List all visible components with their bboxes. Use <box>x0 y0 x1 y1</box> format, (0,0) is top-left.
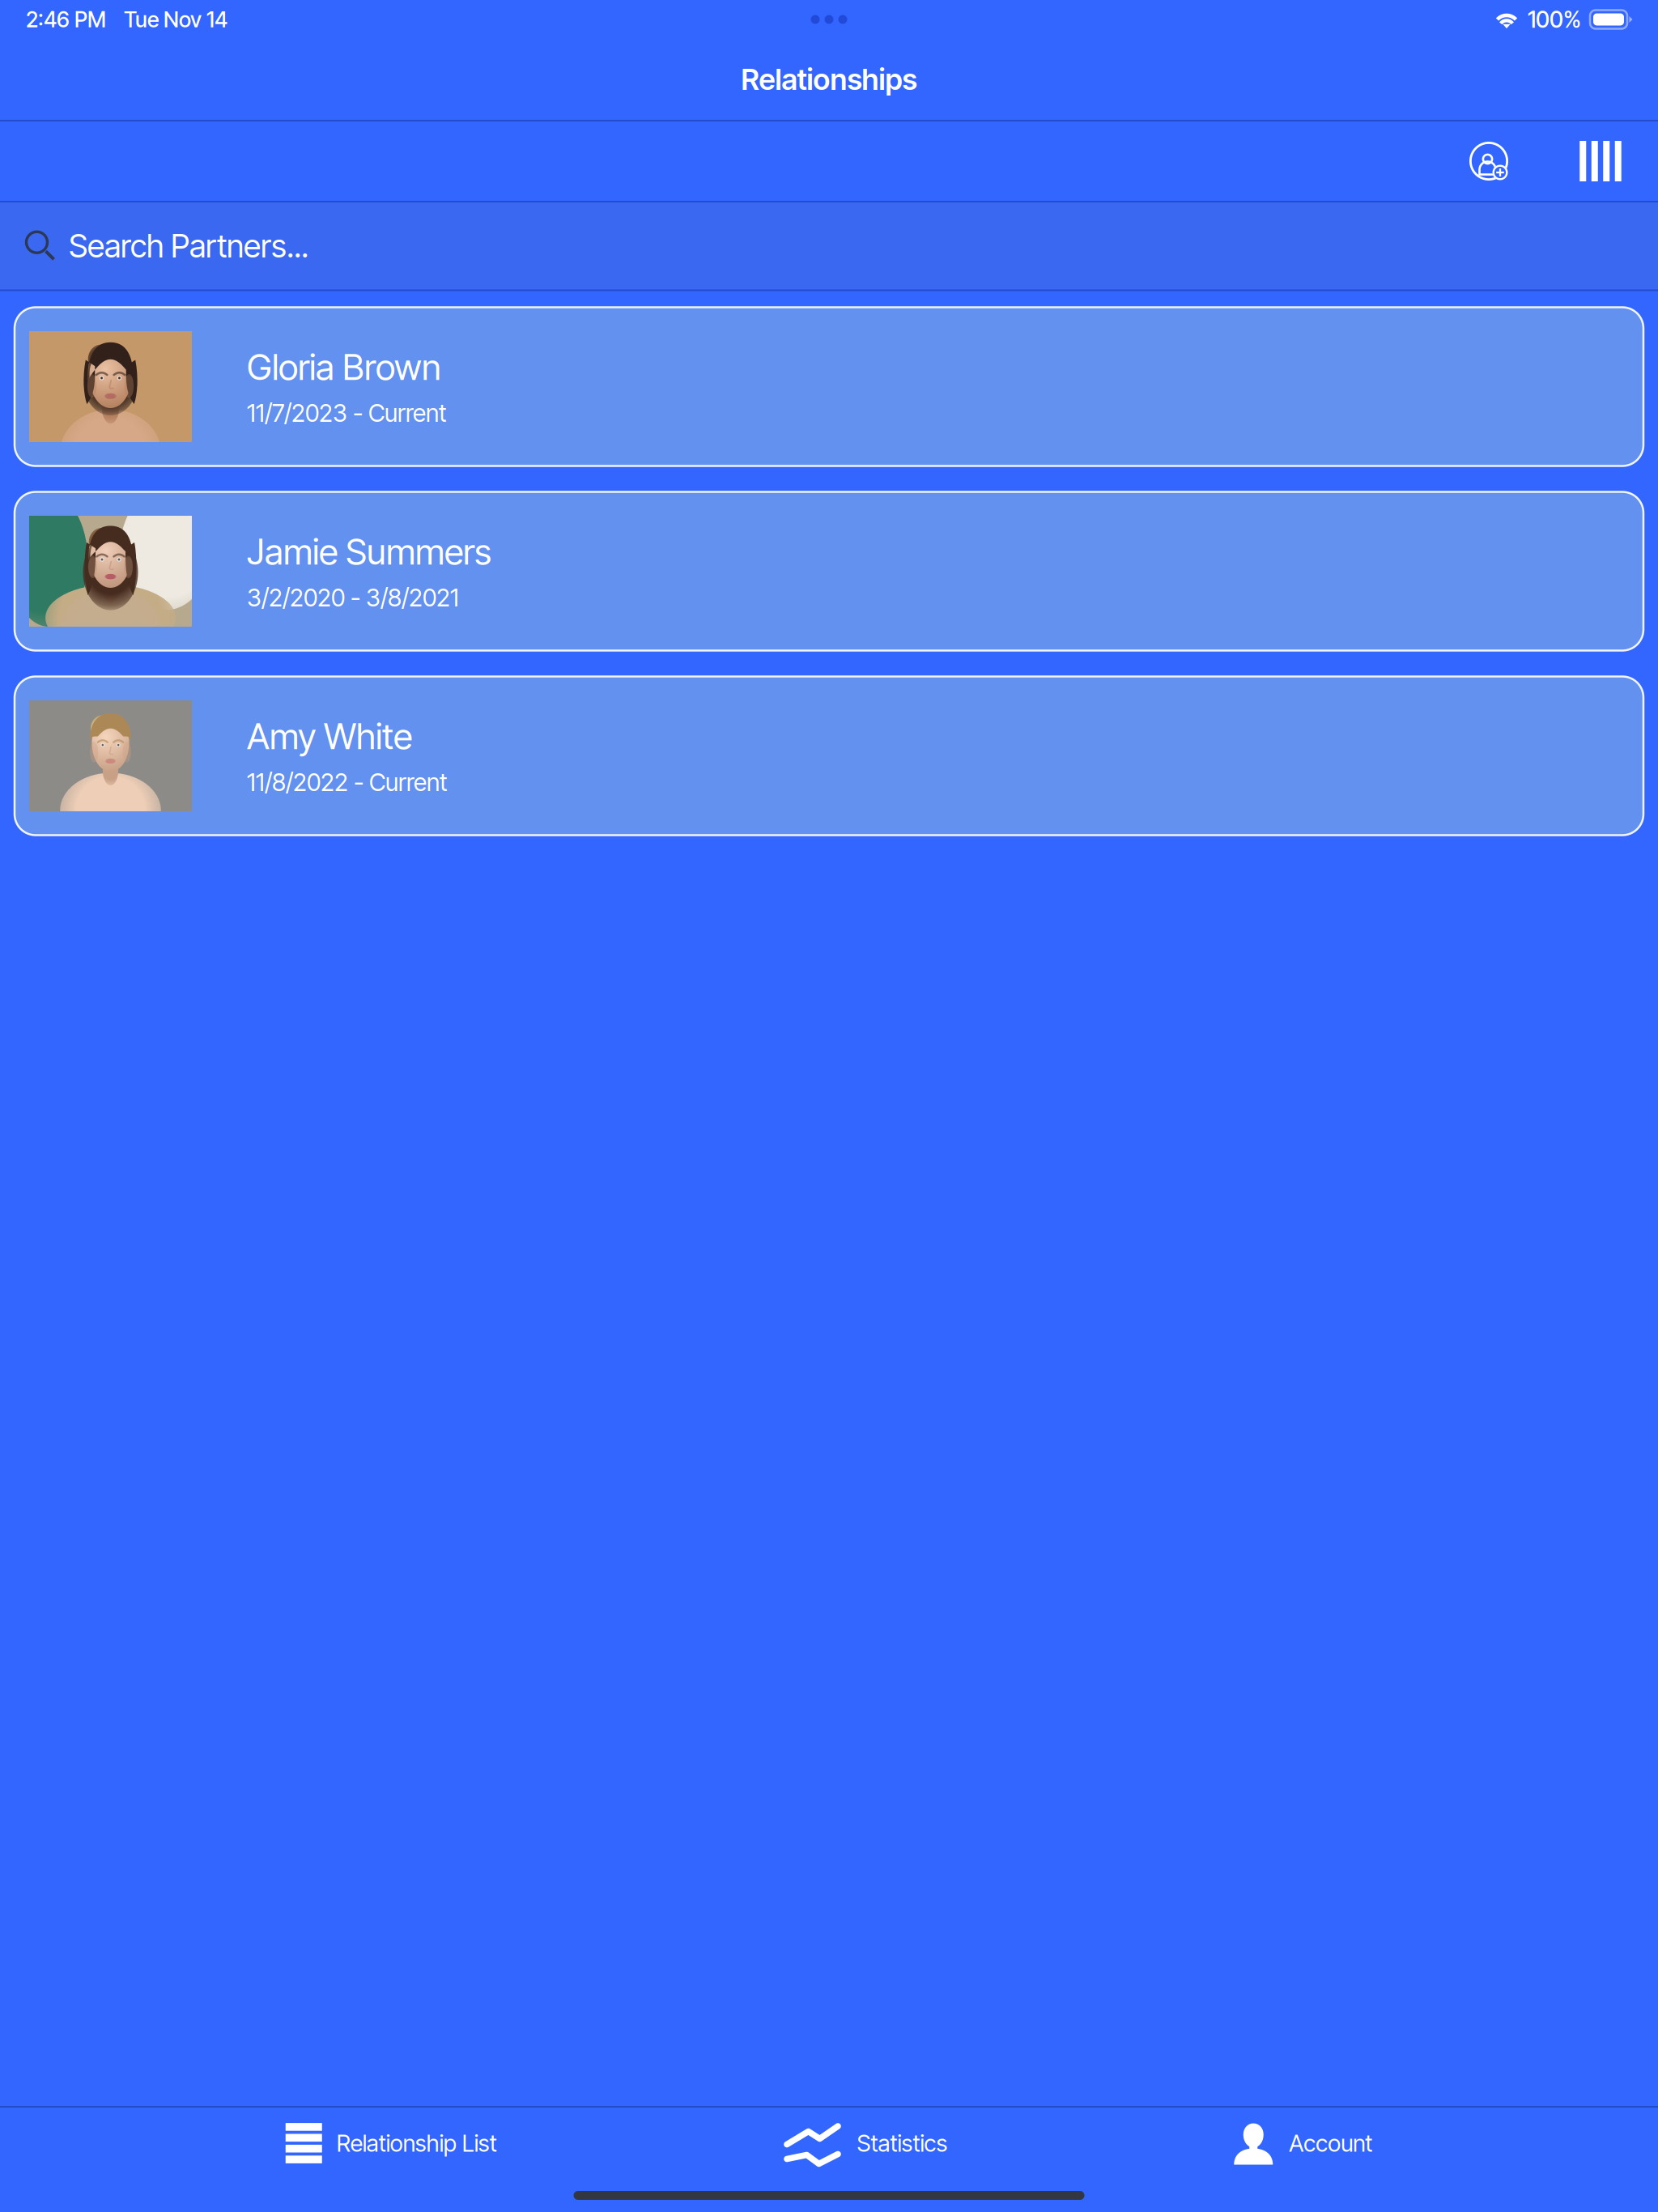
button[interactable]: Gloria Brown <box>15 307 1643 466</box>
staticText: Account <box>1289 2129 1372 2157</box>
button[interactable]: Jamie Summers <box>15 492 1643 651</box>
staticText: Gloria Brown <box>247 345 441 389</box>
staticText: Search Partners... <box>69 227 308 265</box>
staticText: 3/2/2020 - 3/8/2021 <box>247 583 459 612</box>
staticText: 11/8/2022 - Current <box>247 768 447 797</box>
staticText: 11/7/2023 - Current <box>247 398 446 428</box>
staticText: 2:46 PM <box>26 6 106 33</box>
button[interactable]: Add partner <box>1415 120 1562 202</box>
staticText: Amy White <box>247 715 412 758</box>
button[interactable]: Statistics <box>782 2113 948 2173</box>
button[interactable]: Account <box>1233 2113 1372 2173</box>
staticText: 100% <box>1528 6 1581 33</box>
button[interactable]: Relationship List <box>286 2113 497 2173</box>
staticText: Jamie Summers <box>247 530 491 573</box>
staticText: Relationships <box>741 62 917 97</box>
button[interactable]: Show columns <box>1562 120 1639 202</box>
staticText: Tue Nov 14 <box>124 6 227 33</box>
staticText: Statistics <box>857 2129 948 2157</box>
button[interactable]: Search Partners... <box>0 202 1658 289</box>
staticText: Relationship List <box>337 2129 497 2157</box>
button[interactable]: Amy White <box>15 676 1643 835</box>
